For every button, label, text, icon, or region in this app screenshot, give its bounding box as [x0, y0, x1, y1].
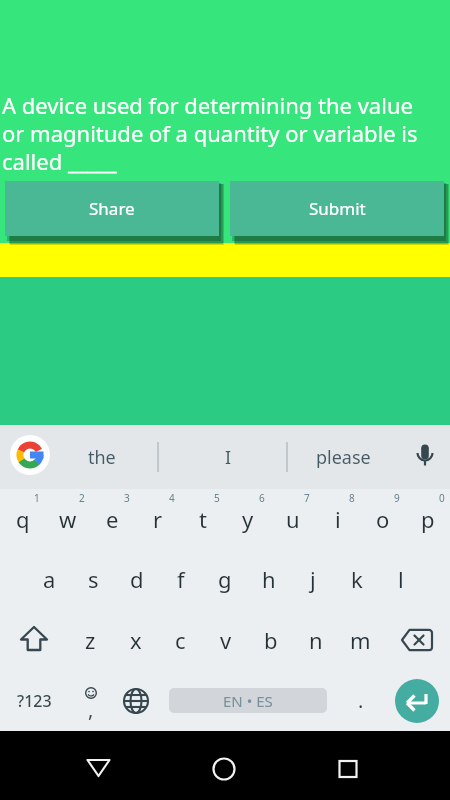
staticText: a — [43, 564, 56, 594]
staticText: A device used for determining the value … — [2, 90, 450, 177]
button[interactable]: o — [360, 489, 405, 549]
staticText: please — [316, 445, 371, 470]
staticText: n — [309, 625, 323, 655]
button[interactable]: Share — [5, 181, 219, 236]
button[interactable]: g — [203, 549, 247, 609]
button[interactable]: j — [291, 549, 335, 609]
button[interactable]: f — [159, 549, 203, 609]
button[interactable]: EN • ES — [158, 670, 338, 731]
staticText: q — [16, 504, 30, 534]
staticText: v — [220, 625, 232, 655]
staticText: d — [130, 564, 144, 594]
button[interactable]: b — [248, 609, 293, 670]
staticText: 7 — [304, 491, 310, 505]
button[interactable]: x — [113, 609, 158, 670]
staticText: x — [130, 625, 142, 655]
staticText: o — [376, 504, 390, 534]
staticText: 4 — [169, 491, 175, 505]
staticText: 2 — [79, 491, 85, 505]
button[interactable]: w — [45, 489, 90, 549]
staticText: 9 — [394, 491, 400, 505]
button[interactable]: p — [405, 489, 450, 549]
button[interactable]: e — [90, 489, 135, 549]
button[interactable]: l — [379, 549, 423, 609]
button[interactable] — [76, 746, 120, 790]
staticText: p — [421, 504, 435, 534]
button[interactable]: s — [71, 549, 115, 609]
staticText: Submit — [309, 197, 366, 220]
staticText: i — [335, 504, 341, 534]
button[interactable]: q — [0, 489, 45, 549]
button[interactable]: m — [338, 609, 383, 670]
button[interactable]: please — [287, 425, 400, 489]
button[interactable]: r — [135, 489, 180, 549]
staticText: z — [85, 625, 96, 655]
button[interactable]: t — [180, 489, 225, 549]
staticText: 6 — [259, 491, 265, 505]
button[interactable]: n — [293, 609, 338, 670]
button[interactable] — [409, 442, 441, 474]
staticText: 3 — [124, 491, 130, 505]
button[interactable] — [10, 435, 50, 475]
staticText: . — [358, 687, 364, 714]
staticText: y — [242, 504, 254, 534]
staticText: k — [351, 564, 363, 594]
staticText: 8 — [349, 491, 355, 505]
staticText: g — [218, 564, 232, 594]
button[interactable]: u — [270, 489, 315, 549]
staticText: 0 — [439, 491, 445, 505]
staticText: the — [88, 445, 116, 470]
button[interactable] — [113, 670, 158, 731]
staticText: l — [398, 564, 404, 594]
staticText: c — [175, 625, 186, 655]
staticText: f — [177, 564, 185, 594]
staticText: h — [262, 564, 276, 594]
staticText: j — [310, 564, 316, 594]
button[interactable]: a — [27, 549, 71, 609]
button[interactable]: v — [203, 609, 248, 670]
staticText: s — [88, 564, 99, 594]
staticText: u — [286, 504, 300, 534]
staticText: EN • ES — [223, 691, 273, 711]
staticText: m — [350, 625, 371, 655]
button[interactable]: h — [247, 549, 291, 609]
staticText: I — [225, 445, 232, 470]
button[interactable] — [383, 609, 450, 670]
button[interactable]: I — [166, 425, 290, 489]
button[interactable]: z — [68, 609, 113, 670]
button[interactable]: i — [315, 489, 360, 549]
staticText: r — [153, 504, 163, 534]
button[interactable]: Submit — [230, 181, 444, 236]
staticText: e — [106, 504, 119, 534]
staticText: ?123 — [17, 690, 52, 712]
staticText: Share — [89, 197, 135, 220]
button[interactable]: the — [52, 425, 152, 489]
button[interactable]: d — [115, 549, 159, 609]
staticText: 1 — [34, 491, 40, 505]
button[interactable]: . — [338, 670, 383, 731]
button[interactable]: k — [335, 549, 379, 609]
button[interactable]: c — [158, 609, 203, 670]
staticText: b — [264, 625, 278, 655]
button[interactable] — [383, 670, 450, 731]
button[interactable]: , — [68, 670, 113, 731]
staticText: w — [59, 504, 77, 534]
button[interactable]: y — [225, 489, 270, 549]
staticText: , — [88, 696, 94, 723]
staticText: t — [199, 504, 207, 534]
staticText: 5 — [214, 491, 220, 505]
button[interactable] — [202, 747, 246, 791]
button[interactable] — [0, 609, 68, 670]
button[interactable]: ?123 — [0, 670, 68, 731]
button[interactable] — [326, 747, 370, 791]
